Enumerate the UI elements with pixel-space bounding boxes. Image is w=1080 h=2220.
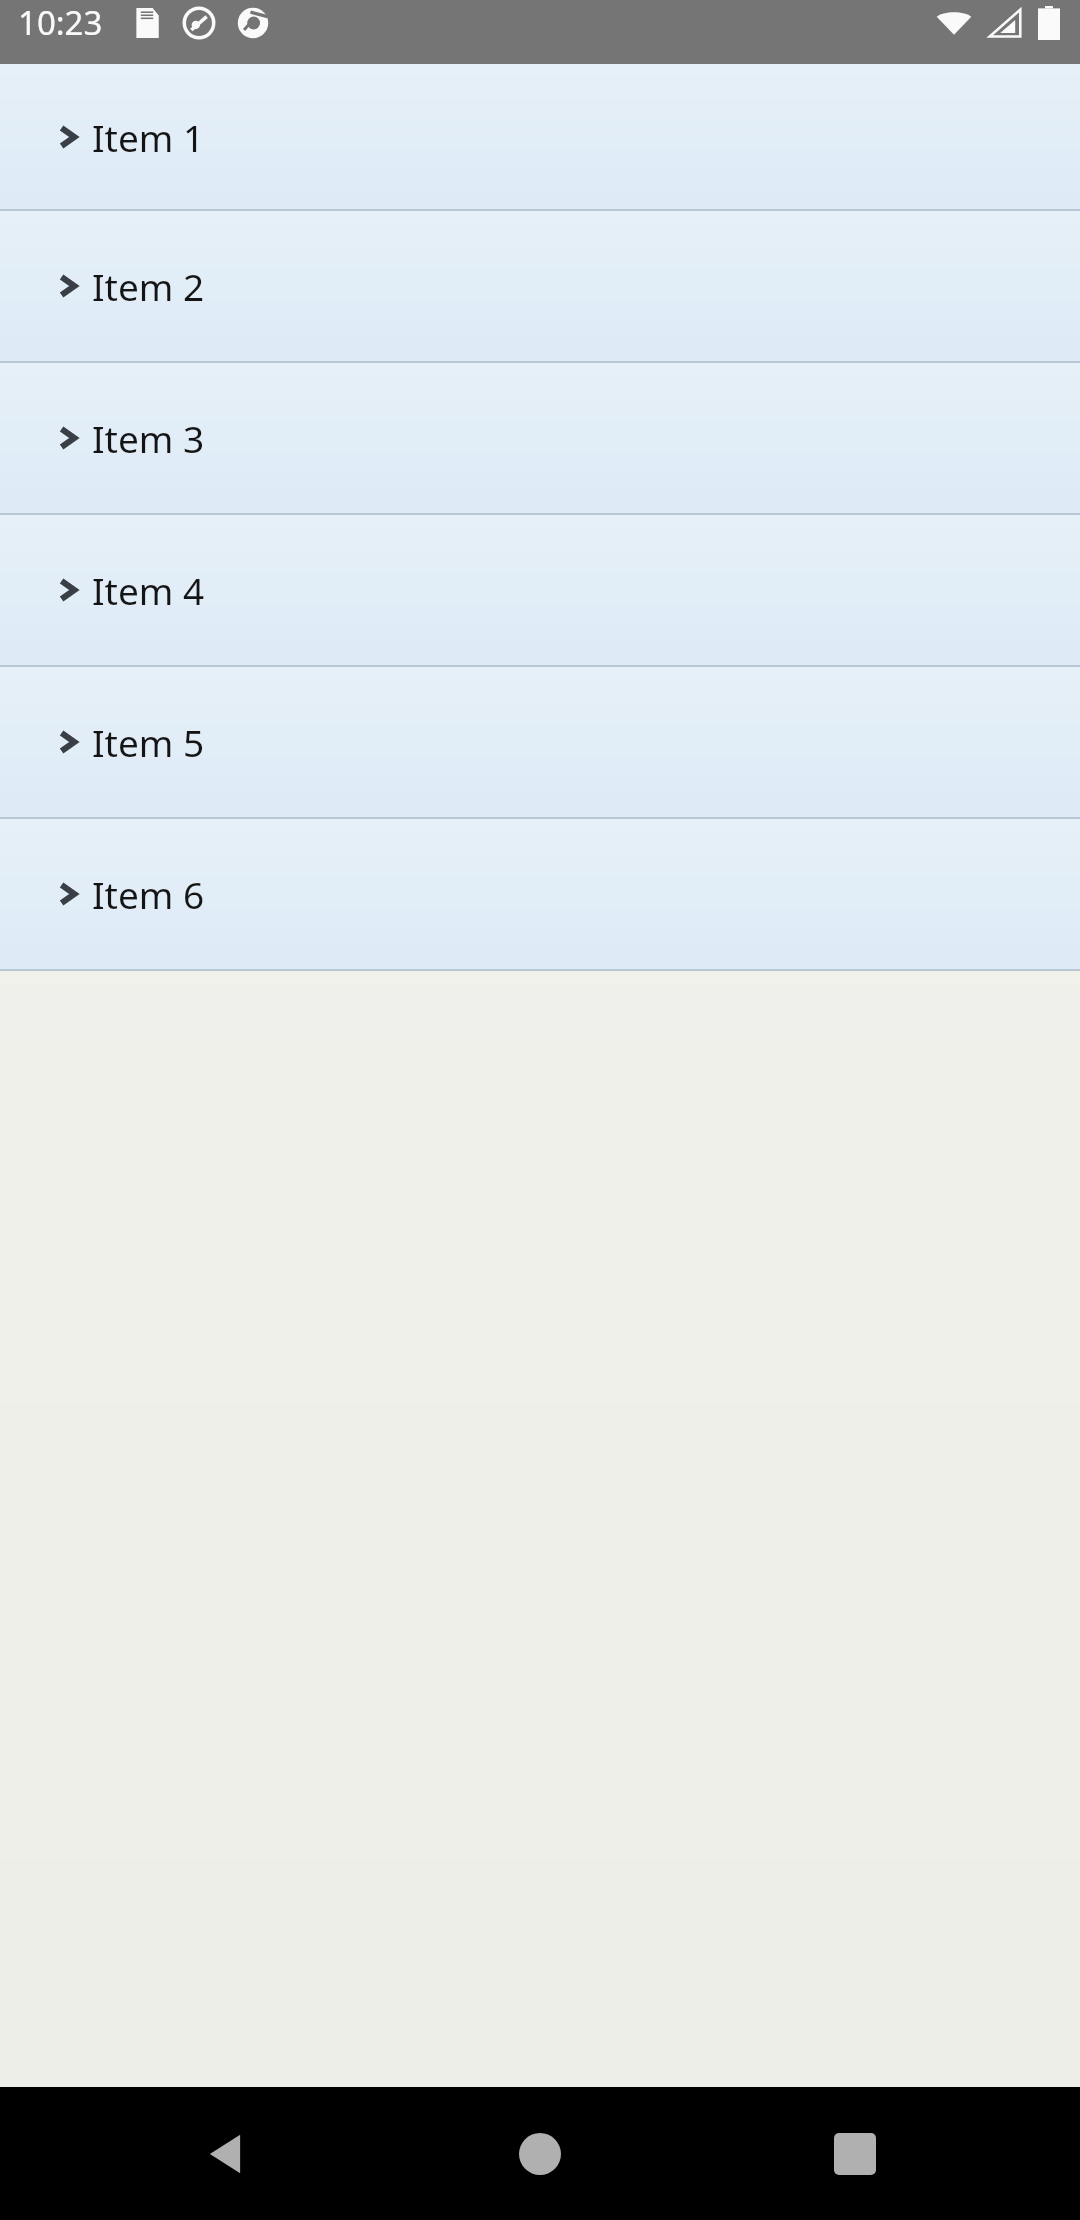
staticText: Item 3 [92,413,205,463]
staticText: 10:23 [18,0,103,45]
button[interactable]: Item 6 [0,819,1080,969]
button[interactable]: Back [135,2087,315,2220]
staticText: Item 4 [92,565,205,615]
button[interactable]: Item 5 [0,667,1080,817]
staticText: Item 1 [92,112,205,162]
button[interactable]: Item 2 [0,211,1080,361]
button[interactable]: Home [450,2087,630,2220]
button[interactable]: Item 3 [0,363,1080,513]
staticText: Item 2 [92,261,205,311]
staticText: Item 5 [92,717,205,767]
staticText: Item 6 [92,869,205,919]
button[interactable]: Item 1 [0,64,1080,209]
button[interactable]: Recent apps [765,2087,945,2220]
button[interactable]: Item 4 [0,515,1080,665]
